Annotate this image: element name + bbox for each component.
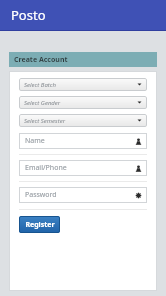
staticText: Select Gender (24, 99, 137, 107)
staticText: Select Semester (24, 117, 137, 125)
button[interactable]: Name (19, 133, 147, 149)
button[interactable]: Email/Phone (19, 160, 147, 176)
other: User (135, 138, 142, 145)
other: Password (135, 192, 142, 199)
other: User (135, 165, 142, 172)
button[interactable]: Select Batch (19, 78, 147, 91)
staticText: Password (25, 190, 135, 200)
button[interactable]: Register (19, 216, 60, 233)
button[interactable]: Select Gender (19, 96, 147, 109)
staticText: Select Batch (24, 81, 137, 89)
staticText: Name (25, 136, 135, 146)
staticText: Create Account (14, 55, 68, 65)
button[interactable]: Password (19, 187, 147, 203)
button[interactable]: Select Semester (19, 114, 147, 127)
staticText: Posto (11, 6, 46, 24)
staticText: Email/Phone (25, 163, 135, 173)
staticText: Register (25, 220, 55, 230)
